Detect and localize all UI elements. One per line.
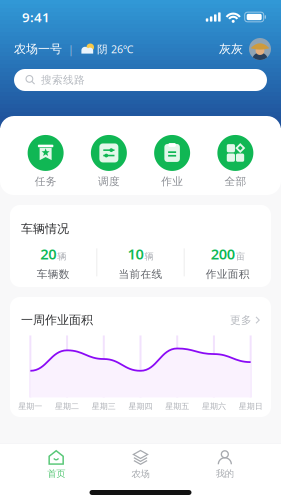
- button[interactable]: 农场: [98, 444, 183, 486]
- button[interactable]: 农场一号: [14, 42, 134, 56]
- staticText: 车辆数: [37, 268, 70, 281]
- staticText: 10: [127, 244, 143, 264]
- staticText: 当前在线: [118, 268, 162, 281]
- staticText: 星期三: [92, 401, 116, 411]
- staticText: 灰灰: [219, 42, 243, 56]
- staticText: 作业: [161, 175, 183, 188]
- staticText: 200: [211, 244, 235, 264]
- staticText: 调度: [98, 175, 120, 188]
- staticText: 农场一号: [14, 42, 62, 56]
- staticText: 星期二: [55, 401, 79, 411]
- staticText: 亩: [236, 251, 245, 262]
- staticText: 更多: [230, 313, 252, 327]
- staticText: |: [68, 42, 74, 56]
- button[interactable]: 任务: [14, 123, 77, 188]
- staticText: 农场: [131, 468, 149, 480]
- staticText: 星期一: [18, 401, 42, 411]
- staticText: 阴 26℃: [97, 42, 134, 56]
- staticText: 辆: [57, 251, 66, 262]
- staticText: 9:41: [22, 8, 50, 26]
- staticText: 车辆情况: [21, 221, 69, 236]
- staticText: 星期日: [239, 401, 263, 411]
- button[interactable]: 全部: [204, 123, 267, 188]
- staticText: 星期六: [202, 401, 226, 411]
- staticText: 首页: [47, 468, 65, 479]
- staticText: 我的: [216, 468, 234, 479]
- staticText: 星期四: [128, 401, 152, 411]
- staticText: 全部: [224, 175, 246, 188]
- button[interactable]: 灰灰: [219, 38, 271, 60]
- button[interactable]: 首页: [14, 444, 98, 486]
- staticText: 星期五: [165, 401, 189, 411]
- button[interactable]: 更多: [230, 313, 260, 327]
- button[interactable]: 搜索线路: [14, 69, 267, 91]
- button[interactable]: 作业: [140, 123, 204, 188]
- staticText: 一周作业面积: [21, 313, 93, 327]
- staticText: 辆: [144, 251, 153, 262]
- staticText: 20: [40, 244, 56, 264]
- button[interactable]: 调度: [77, 123, 140, 188]
- staticText: 任务: [35, 175, 57, 188]
- staticText: 作业面积: [206, 268, 250, 281]
- button[interactable]: 我的: [183, 444, 267, 486]
- staticText: 搜索线路: [41, 73, 85, 86]
